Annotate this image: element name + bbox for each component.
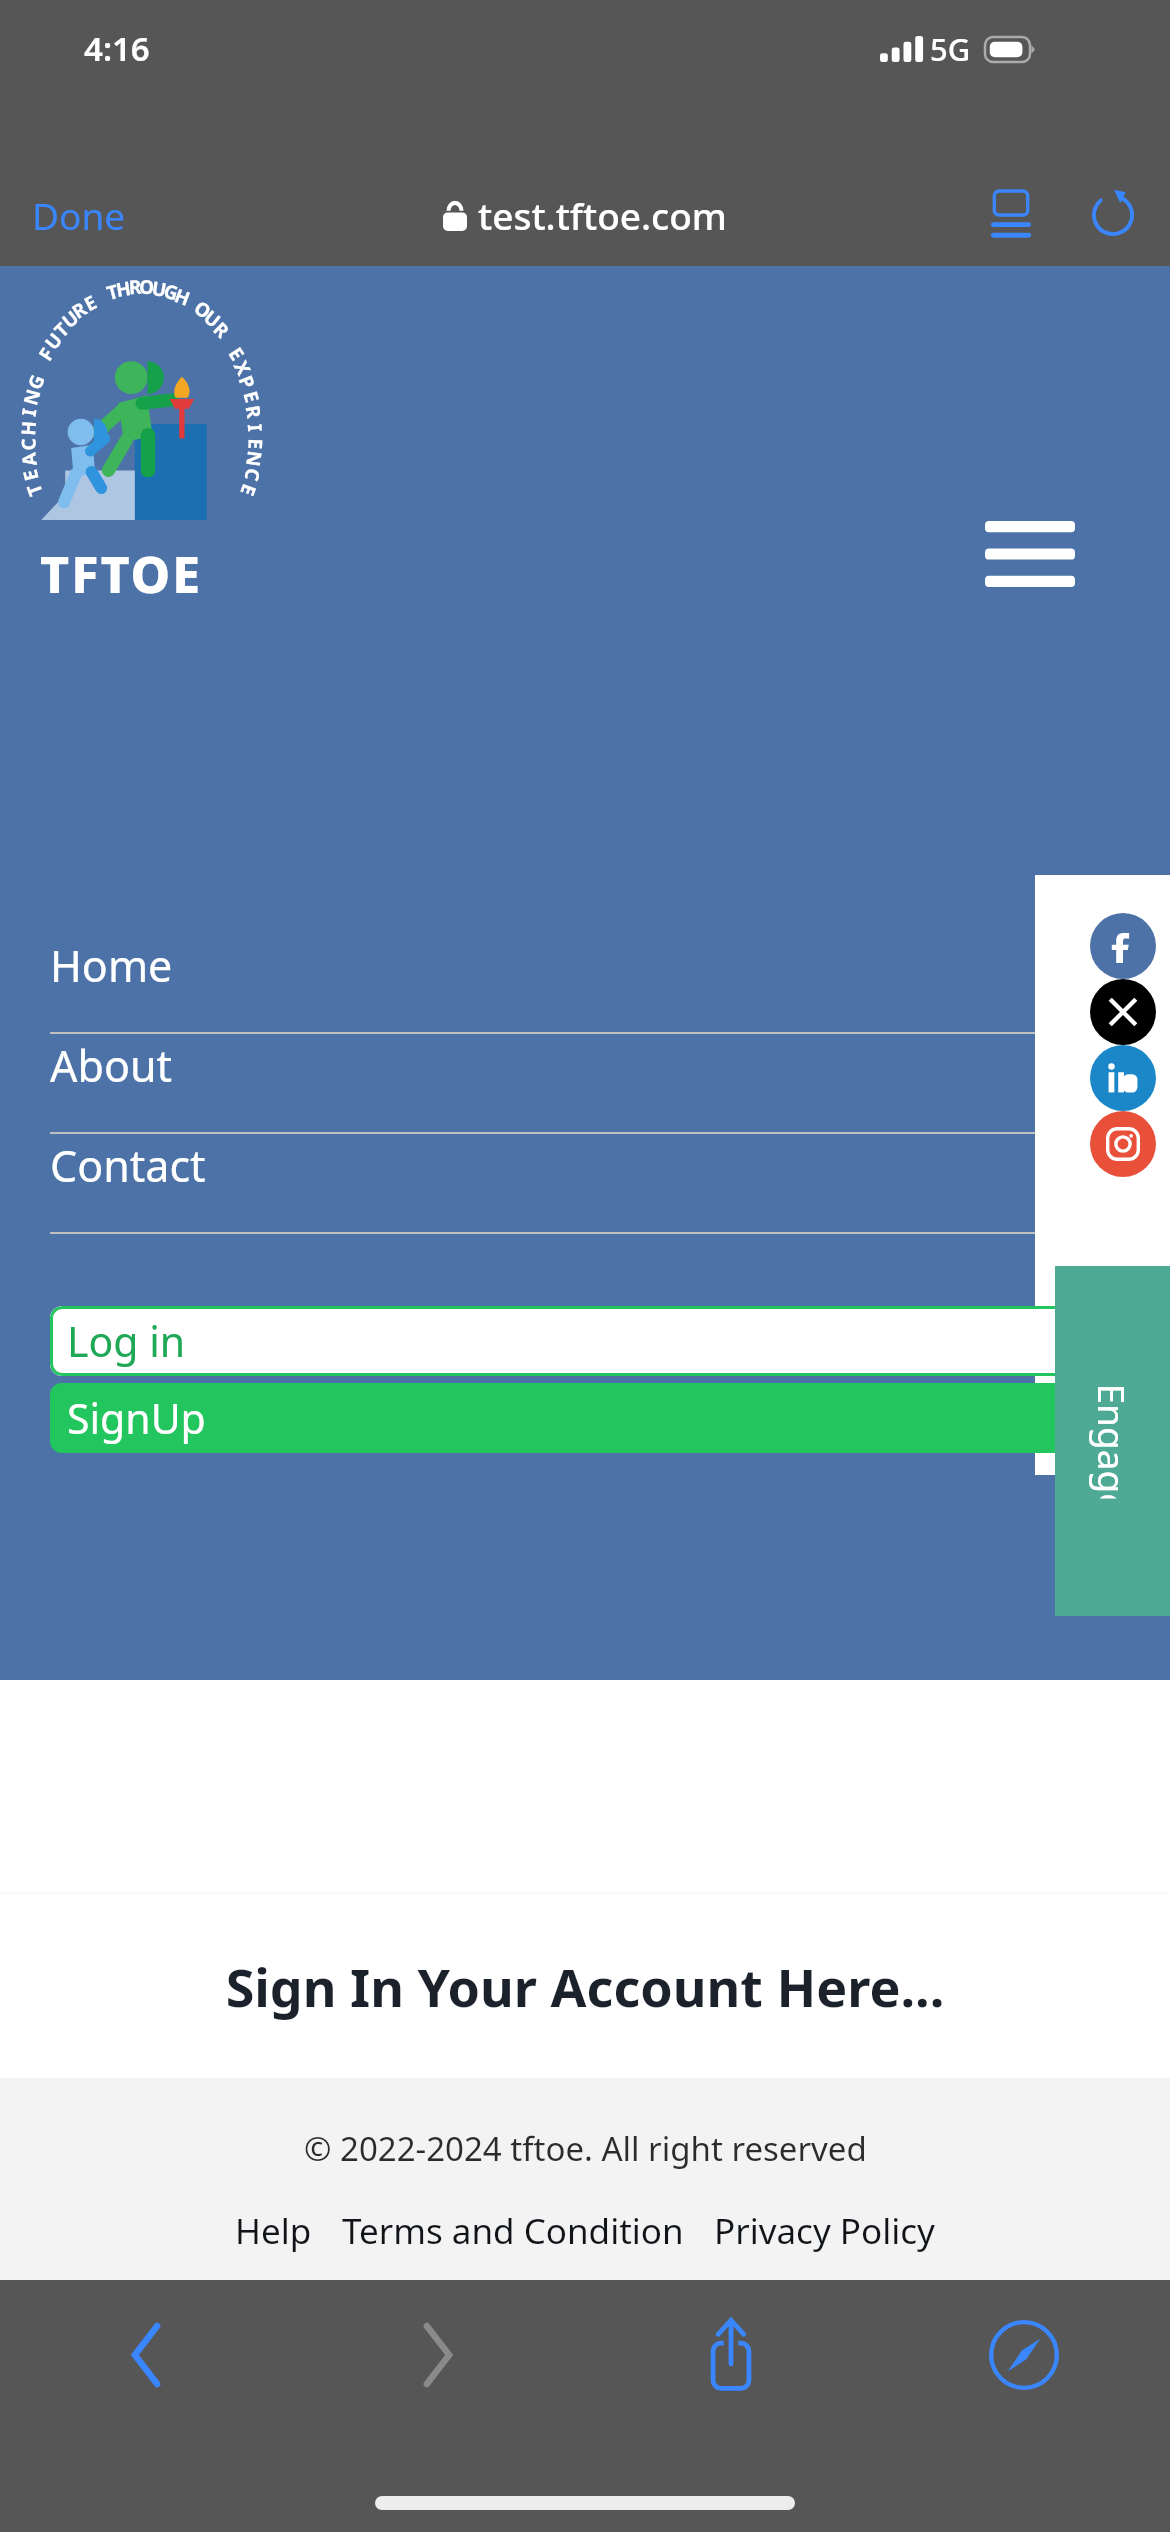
staticText: Engage with us [1087, 1383, 1137, 1498]
button[interactable]: Instagram [1090, 1111, 1156, 1177]
staticText: C [238, 465, 267, 484]
staticText: Contact [50, 1136, 206, 1195]
staticText: N [17, 386, 47, 408]
button[interactable]: LinkedIn [1090, 1045, 1156, 1111]
staticText: About [50, 1036, 173, 1095]
button[interactable]: Forward [292, 2280, 584, 2430]
button[interactable]: Reader view [982, 186, 1040, 244]
button[interactable]: About [50, 1034, 1120, 1134]
staticText: T [48, 317, 75, 343]
staticText: G [161, 278, 181, 306]
staticText: E [17, 466, 44, 483]
staticText: 4:16 [84, 26, 150, 71]
staticText: R [128, 274, 143, 300]
staticText: Help [235, 2207, 312, 2255]
staticText: G [21, 371, 51, 393]
staticText: U [39, 327, 68, 355]
staticText: E [237, 388, 265, 406]
staticText: N [240, 449, 268, 469]
button[interactable]: Engage with us [1055, 1266, 1170, 1616]
staticText: Log in [67, 1313, 186, 1369]
button[interactable]: Menu [975, 499, 1085, 609]
staticText: E [242, 438, 269, 450]
staticText: E [80, 289, 101, 317]
button[interactable]: Terms and Condition [340, 2205, 686, 2257]
staticText: O [189, 295, 217, 325]
staticText: H [171, 282, 194, 312]
button[interactable]: Privacy Policy [712, 2205, 937, 2257]
staticText: F [33, 342, 60, 366]
button[interactable]: Log in [50, 1306, 1118, 1376]
staticText: I [242, 423, 268, 433]
staticText: H [114, 275, 133, 303]
button[interactable]: Facebook [1090, 913, 1156, 979]
staticText: Home [50, 936, 173, 995]
staticText: E [223, 342, 250, 366]
staticText: C [15, 437, 42, 451]
button[interactable]: Done [26, 184, 132, 246]
staticText: P [233, 372, 261, 392]
staticText: R [67, 295, 92, 324]
staticText: A [15, 450, 43, 468]
staticText: Privacy Policy [714, 2207, 935, 2255]
staticText: TFTOE [40, 540, 203, 608]
button[interactable]: Back [0, 2280, 292, 2430]
button[interactable]: Share [584, 2280, 877, 2430]
staticText: I [15, 406, 42, 418]
button[interactable]: SignUp [50, 1383, 1118, 1453]
staticText: X [228, 356, 257, 380]
staticText: Terms and Condition [342, 2207, 684, 2255]
staticText: Done [32, 190, 126, 240]
staticText: U [150, 275, 169, 303]
button[interactable]: Help [233, 2205, 314, 2257]
staticText: T [104, 278, 121, 306]
staticText: H [15, 420, 42, 436]
staticText: 5G [930, 28, 971, 70]
staticText: U [56, 304, 84, 334]
button[interactable]: Home [50, 934, 1120, 1034]
staticText: T [20, 480, 49, 500]
staticText: E [234, 480, 263, 500]
staticText: Sign In Your Account Here... [0, 1951, 1170, 2022]
staticText: R [240, 403, 267, 421]
button[interactable]: Tabs [877, 2280, 1170, 2430]
button[interactable]: X [1090, 979, 1156, 1045]
staticText: SignUp [67, 1390, 206, 1446]
staticText: R [208, 316, 235, 344]
staticText: test.tftoe.com [478, 190, 727, 240]
staticText: U [198, 304, 226, 334]
staticText: O [138, 274, 156, 300]
button[interactable]: Contact [50, 1134, 1120, 1234]
button[interactable]: Reload [1084, 186, 1142, 244]
staticText: © 2022-2024 tftoe. All right reserved [304, 2126, 867, 2171]
